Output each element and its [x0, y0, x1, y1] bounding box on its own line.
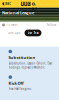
staticText: BBC — [5, 2, 11, 6]
staticText: First Half begins. — [8, 87, 31, 91]
staticText: Rodrigo replaces Mitchell. — [8, 66, 45, 69]
button[interactable]: Line-ups — [6, 30, 22, 36]
staticText: Substitution, Leyton Orient. Dan — [8, 62, 52, 65]
staticText: Kick Off — [8, 80, 23, 86]
staticText: Line-ups — [8, 31, 20, 35]
staticText: B — [21, 2, 23, 6]
staticText: C — [28, 2, 30, 6]
staticText: National League — [2, 10, 34, 15]
staticText: SPORT — [32, 0, 38, 12]
staticText: 15 mins — [6, 23, 17, 27]
staticText: Live Text — [27, 31, 38, 35]
staticText: Substitution — [8, 55, 35, 60]
staticText: Follow — [47, 23, 56, 27]
button[interactable]: Back — [0, 0, 13, 7]
button[interactable]: Live Text — [24, 30, 41, 36]
button[interactable]: Follow — [46, 23, 57, 27]
staticText: B — [25, 2, 27, 6]
